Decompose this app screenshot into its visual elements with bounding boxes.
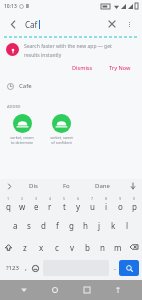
button[interactable]: b bbox=[80, 236, 95, 258]
button[interactable]: Recents bbox=[79, 282, 95, 298]
staticText: t bbox=[63, 201, 66, 212]
staticText: 4 bbox=[49, 196, 52, 201]
button[interactable]: c bbox=[49, 236, 65, 258]
button[interactable]: Clear bbox=[104, 16, 120, 32]
staticText: sorbet, cream to determine bbox=[10, 135, 34, 145]
staticText: b bbox=[85, 242, 90, 253]
button[interactable]: Dane bbox=[92, 181, 113, 191]
button[interactable]: s bbox=[22, 215, 36, 236]
button[interactable]: d bbox=[36, 215, 50, 236]
button[interactable]: , bbox=[21, 260, 30, 276]
button[interactable]: k bbox=[106, 215, 120, 236]
staticText: c bbox=[55, 242, 59, 253]
button[interactable]: sorbet, sweet of confident bbox=[46, 114, 76, 145]
staticText: 5 bbox=[63, 196, 66, 201]
button[interactable]: Cafe bbox=[0, 78, 142, 94]
button[interactable]: Try Now bbox=[106, 63, 134, 72]
staticText: Dane bbox=[95, 182, 110, 190]
button[interactable]: sorbet, cream to determine bbox=[7, 114, 37, 145]
button[interactable]: 2 bbox=[15, 193, 29, 215]
button[interactable]: 7 bbox=[85, 193, 99, 215]
button[interactable]: Back bbox=[16, 282, 32, 298]
staticText: 10:13 bbox=[4, 3, 17, 10]
staticText: u bbox=[90, 201, 95, 212]
button[interactable]: Dismiss bbox=[69, 63, 96, 72]
staticText: 8 bbox=[105, 196, 108, 201]
staticText: x bbox=[39, 242, 44, 253]
staticText: 3 bbox=[35, 196, 38, 201]
staticText: a bbox=[13, 220, 18, 231]
staticText: 6 bbox=[77, 196, 80, 201]
button[interactable]: Backspace bbox=[125, 236, 142, 258]
staticText: Cafe bbox=[19, 82, 32, 90]
button[interactable]: x bbox=[33, 236, 49, 258]
button[interactable]: Back bbox=[5, 16, 21, 32]
button[interactable]: Home bbox=[47, 282, 63, 298]
button[interactable]: n bbox=[95, 236, 110, 258]
staticText: z bbox=[23, 242, 27, 253]
staticText: m bbox=[114, 242, 122, 253]
staticText: q bbox=[6, 201, 11, 212]
button[interactable]: j bbox=[92, 215, 106, 236]
staticText: 0 bbox=[133, 196, 136, 201]
staticText: 1 bbox=[7, 196, 10, 201]
button[interactable]: 5 bbox=[57, 193, 71, 215]
button[interactable]: 1 bbox=[1, 193, 15, 215]
button[interactable]: a bbox=[8, 215, 22, 236]
staticText: j bbox=[98, 220, 101, 231]
staticText: s bbox=[27, 220, 31, 231]
button[interactable]: 0 bbox=[127, 193, 141, 215]
staticText: , bbox=[25, 263, 27, 273]
button[interactable]: g bbox=[64, 215, 78, 236]
button[interactable]: v bbox=[65, 236, 80, 258]
staticText: Dis bbox=[29, 182, 38, 190]
staticText: d bbox=[41, 220, 46, 231]
button[interactable]: 6 bbox=[71, 193, 85, 215]
staticText: Search faster with the new app — get bbox=[24, 43, 112, 50]
button[interactable]: Download bbox=[128, 181, 138, 191]
staticText: sorbet, sweet of confident bbox=[50, 135, 73, 145]
staticText: g bbox=[69, 220, 74, 231]
button[interactable]: 8 bbox=[99, 193, 113, 215]
button[interactable]: 9 bbox=[113, 193, 127, 215]
staticText: 9 bbox=[119, 196, 122, 201]
button[interactable]: Expand bbox=[4, 181, 14, 191]
button[interactable]: Search bbox=[119, 260, 139, 276]
button[interactable]: Dis bbox=[26, 181, 41, 191]
staticText: l bbox=[126, 220, 129, 231]
staticText: e bbox=[34, 201, 39, 212]
staticText: Try Now bbox=[109, 64, 131, 71]
staticText: k bbox=[111, 220, 116, 231]
button[interactable]: 4 bbox=[43, 193, 57, 215]
button[interactable]: Search faster with the new app — get bbox=[0, 38, 142, 59]
button[interactable]: Emoji bbox=[30, 260, 41, 276]
staticText: ADDED bbox=[7, 104, 21, 109]
button[interactable]: Fo bbox=[60, 181, 73, 191]
staticText: p bbox=[132, 201, 137, 212]
staticText: ?123 bbox=[6, 264, 19, 272]
button[interactable]: Assistant bbox=[110, 282, 126, 298]
staticText: v bbox=[70, 242, 75, 253]
button[interactable]: Shift bbox=[0, 236, 17, 258]
button[interactable]: h bbox=[78, 215, 92, 236]
staticText: n bbox=[100, 242, 105, 253]
staticText: Fo bbox=[63, 182, 70, 190]
button[interactable]: . bbox=[111, 260, 119, 276]
staticText: o bbox=[118, 201, 123, 212]
button[interactable]: ?123 bbox=[3, 260, 21, 276]
button[interactable]: l bbox=[120, 215, 134, 236]
staticText: . bbox=[114, 263, 116, 273]
staticText: f bbox=[56, 220, 59, 231]
staticText: Dismiss bbox=[72, 64, 93, 71]
button[interactable]: 3 bbox=[29, 193, 43, 215]
button[interactable]: m bbox=[110, 236, 125, 258]
button[interactable]: f bbox=[50, 215, 64, 236]
staticText: 7 bbox=[91, 196, 94, 201]
button[interactable]: z bbox=[17, 236, 33, 258]
staticText: r bbox=[48, 201, 52, 212]
staticText: Caf bbox=[25, 19, 38, 30]
button[interactable]: More options bbox=[121, 16, 137, 32]
staticText: y bbox=[76, 201, 81, 212]
staticText: i bbox=[105, 201, 108, 212]
